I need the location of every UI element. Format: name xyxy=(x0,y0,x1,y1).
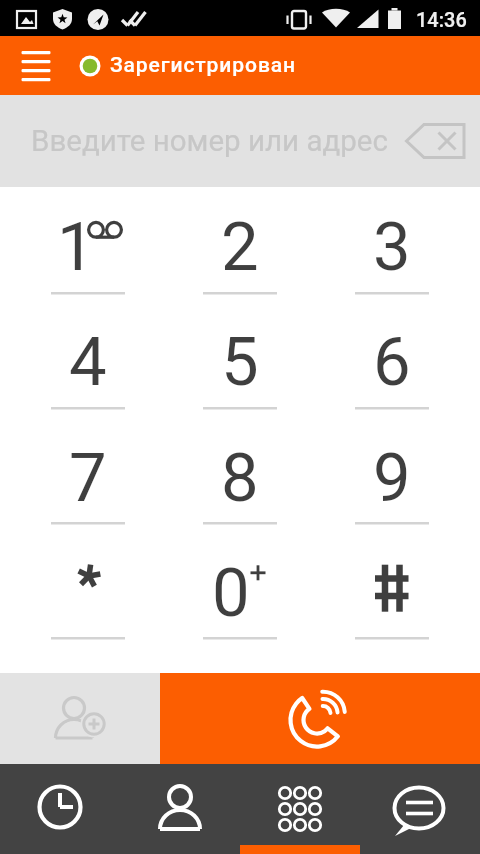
button[interactable] xyxy=(12,188,164,302)
button[interactable] xyxy=(0,673,160,764)
button[interactable] xyxy=(164,303,316,417)
staticText: 8 xyxy=(221,439,259,518)
button[interactable] xyxy=(316,188,468,302)
staticText: 14:36 xyxy=(416,8,467,31)
staticText: Зарегистрирован xyxy=(110,53,296,78)
button[interactable] xyxy=(164,419,316,533)
button[interactable] xyxy=(392,108,476,174)
button[interactable] xyxy=(316,303,468,417)
button[interactable] xyxy=(12,419,164,533)
button[interactable] xyxy=(12,303,164,417)
button[interactable] xyxy=(12,534,164,648)
staticText: 7 xyxy=(69,439,107,518)
staticText: 2 xyxy=(221,208,259,287)
button[interactable] xyxy=(160,673,480,764)
staticText: 3 xyxy=(373,208,411,287)
button[interactable] xyxy=(8,44,64,88)
button[interactable] xyxy=(360,764,480,854)
staticText: 6 xyxy=(373,323,411,402)
staticText: 4 xyxy=(69,323,107,402)
staticText: 0 xyxy=(212,554,250,633)
button[interactable] xyxy=(316,534,468,648)
staticText: 9 xyxy=(373,439,411,518)
button[interactable] xyxy=(120,764,240,854)
staticText: 5 xyxy=(221,323,259,402)
button[interactable] xyxy=(240,764,360,854)
staticText: Введите номер или адрес xyxy=(31,124,388,159)
button[interactable] xyxy=(164,534,316,648)
button[interactable] xyxy=(0,764,120,854)
staticText: 1 xyxy=(57,208,95,287)
button[interactable] xyxy=(164,188,316,302)
button[interactable] xyxy=(316,419,468,533)
